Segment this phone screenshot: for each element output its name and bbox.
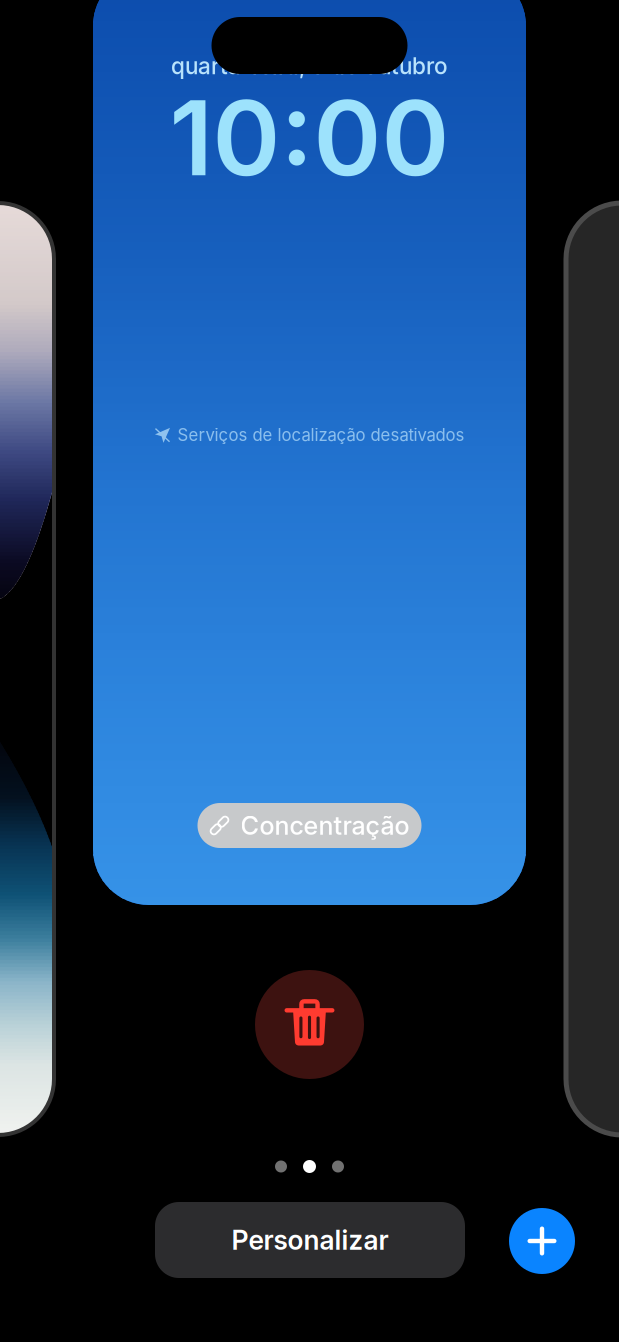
button[interactable]: Personalizar (155, 1202, 465, 1278)
button[interactable]: Adicionar fundo de tela (509, 1208, 575, 1274)
button[interactable]: Apagar (255, 970, 364, 1079)
staticText: Serviços de localização desativados (177, 425, 464, 445)
staticText: quarta-feira, 5 de outubro (171, 52, 448, 80)
staticText: 10:00 (169, 76, 449, 200)
staticText: Concentração (240, 810, 409, 841)
staticText: Personalizar (231, 1224, 388, 1256)
